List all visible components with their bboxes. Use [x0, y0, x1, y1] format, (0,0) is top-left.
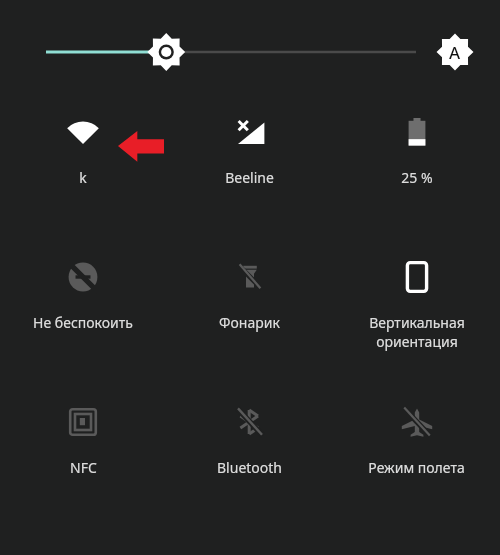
staticText: Фонарик: [219, 313, 280, 332]
other: Bluetooth: [228, 400, 272, 444]
other: NFC: [61, 400, 105, 444]
button[interactable]: Brightness slider: [46, 30, 416, 74]
staticText: k: [79, 168, 87, 187]
staticText: Режим полета: [368, 458, 465, 477]
other: Airplane mode: [395, 400, 439, 444]
button[interactable]: Do not disturb: [29, 249, 137, 338]
button[interactable]: Wi-Fi: [57, 104, 109, 193]
other: Portrait orientation: [395, 255, 439, 299]
button[interactable]: Battery: [391, 104, 443, 193]
button[interactable]: Airplane mode: [364, 394, 469, 483]
button[interactable]: Flashlight: [215, 249, 284, 338]
staticText: Beeline: [225, 168, 274, 187]
other: Mobile data: [228, 110, 272, 154]
button[interactable]: NFC: [57, 394, 109, 483]
other: Do not disturb: [61, 255, 105, 299]
button[interactable]: Mobile data: [221, 104, 278, 193]
button[interactable]: Auto brightness: [434, 31, 476, 73]
staticText: Не беспокоить: [33, 313, 133, 332]
other: Flashlight: [228, 255, 272, 299]
staticText: 25 %: [401, 168, 433, 187]
staticText: Bluetooth: [217, 458, 282, 477]
staticText: A: [449, 41, 461, 64]
other: Battery: [395, 110, 439, 154]
button[interactable]: Bluetooth: [213, 394, 286, 483]
staticText: NFC: [70, 458, 97, 477]
staticText: Вертикальная ориентация: [369, 313, 465, 351]
other: Wi-Fi: [61, 110, 105, 154]
button[interactable]: Portrait orientation: [342, 249, 492, 357]
